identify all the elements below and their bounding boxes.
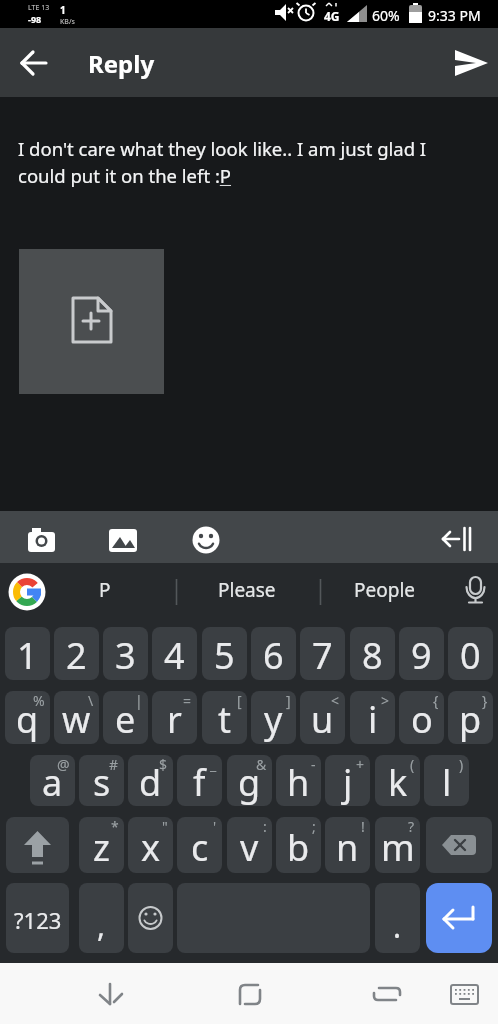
staticText: * — [111, 817, 119, 836]
button[interactable]: P — [45, 563, 165, 616]
button[interactable]: g — [227, 755, 272, 806]
button[interactable]: j — [325, 755, 370, 806]
staticText: { — [433, 691, 439, 710]
staticText: 8 — [362, 631, 383, 680]
staticText: $ — [159, 755, 168, 774]
button[interactable]: 6 — [251, 627, 296, 680]
staticText: c — [191, 823, 209, 872]
staticText: v — [240, 823, 259, 872]
button[interactable] — [219, 965, 279, 1021]
button[interactable]: 7 — [300, 627, 345, 680]
button[interactable]: c — [177, 817, 222, 873]
button[interactable]: 9 — [399, 627, 444, 680]
button[interactable]: w — [54, 691, 99, 744]
button[interactable]: q — [5, 691, 50, 744]
staticText: _ — [210, 755, 217, 774]
staticText: LTE 13 — [28, 3, 50, 13]
staticText: g — [238, 758, 261, 806]
button[interactable]: b — [276, 817, 321, 873]
staticText: < — [331, 691, 340, 710]
staticText: ( — [410, 755, 415, 774]
staticText: p — [459, 695, 482, 744]
button[interactable]: 4 — [152, 627, 197, 680]
staticText: \ — [88, 691, 94, 710]
button[interactable]: i — [350, 691, 395, 744]
button[interactable] — [6, 817, 69, 873]
staticText: r — [167, 695, 182, 744]
button[interactable]: z — [79, 817, 124, 873]
button[interactable]: d — [128, 755, 173, 806]
staticText: b — [287, 823, 310, 872]
button[interactable]: 1 — [5, 627, 50, 680]
button[interactable]: k — [375, 755, 420, 806]
button[interactable]: t — [202, 691, 247, 744]
button[interactable] — [128, 883, 173, 953]
button[interactable] — [440, 965, 490, 1021]
button[interactable]: 5 — [202, 627, 247, 680]
button[interactable]: e — [103, 691, 148, 744]
button[interactable]: l — [424, 755, 469, 806]
staticText: l — [442, 758, 452, 806]
staticText: 3 — [115, 631, 136, 680]
staticText: n — [336, 823, 359, 872]
button[interactable]: f — [177, 755, 222, 806]
button[interactable] — [6, 568, 48, 610]
button[interactable]: r — [152, 691, 197, 744]
button[interactable] — [436, 517, 478, 557]
button[interactable]: m — [375, 817, 420, 873]
button[interactable]: o — [399, 691, 444, 744]
button[interactable] — [426, 883, 492, 953]
button[interactable] — [357, 965, 417, 1021]
button[interactable]: People — [325, 563, 445, 616]
button[interactable]: 0 — [448, 627, 493, 680]
button[interactable]: x — [128, 817, 173, 873]
button[interactable]: u — [300, 691, 345, 744]
staticText: a — [42, 758, 63, 806]
staticText: People — [354, 577, 416, 603]
button[interactable]: a — [30, 755, 75, 806]
button[interactable] — [75, 965, 135, 1021]
button[interactable] — [426, 817, 492, 873]
button[interactable]: 2 — [54, 627, 99, 680]
staticText: , — [97, 905, 106, 946]
staticText: - — [311, 755, 316, 774]
staticText: q — [16, 695, 39, 744]
button[interactable]: n — [325, 817, 370, 873]
staticText: KB/s — [60, 17, 75, 27]
button[interactable]: s — [79, 755, 124, 806]
staticText: & — [256, 755, 267, 774]
button[interactable]: h — [276, 755, 321, 806]
button[interactable]: p — [448, 691, 493, 744]
staticText: | — [135, 691, 143, 710]
staticText: 6 — [263, 631, 284, 680]
button[interactable]: ?123 — [6, 883, 69, 953]
button[interactable]: , — [79, 883, 124, 953]
staticText: -98 — [28, 13, 42, 25]
staticText: @ — [57, 755, 70, 774]
button[interactable] — [20, 517, 62, 557]
button[interactable] — [102, 517, 144, 557]
staticText: ' — [213, 817, 217, 836]
staticText: 2 — [66, 631, 87, 680]
staticText: } — [482, 691, 488, 710]
button[interactable]: 3 — [103, 627, 148, 680]
staticText: y — [264, 695, 283, 744]
staticText: Reply — [88, 47, 155, 80]
staticText: ?123 — [14, 905, 62, 935]
button[interactable]: y — [251, 691, 296, 744]
button[interactable]: v — [227, 817, 272, 873]
staticText: w — [62, 695, 91, 744]
staticText: ! — [361, 817, 365, 836]
button[interactable]: Please — [187, 563, 307, 616]
button[interactable] — [14, 70, 54, 110]
staticText: 0 — [460, 631, 481, 680]
staticText: [ — [237, 691, 242, 710]
staticText: 1 — [17, 631, 38, 680]
button[interactable] — [19, 249, 164, 394]
staticText: d — [139, 758, 162, 806]
button[interactable]: . — [375, 883, 420, 953]
staticText: P — [99, 577, 111, 603]
button[interactable] — [186, 517, 228, 557]
button[interactable]: 8 — [350, 627, 395, 680]
